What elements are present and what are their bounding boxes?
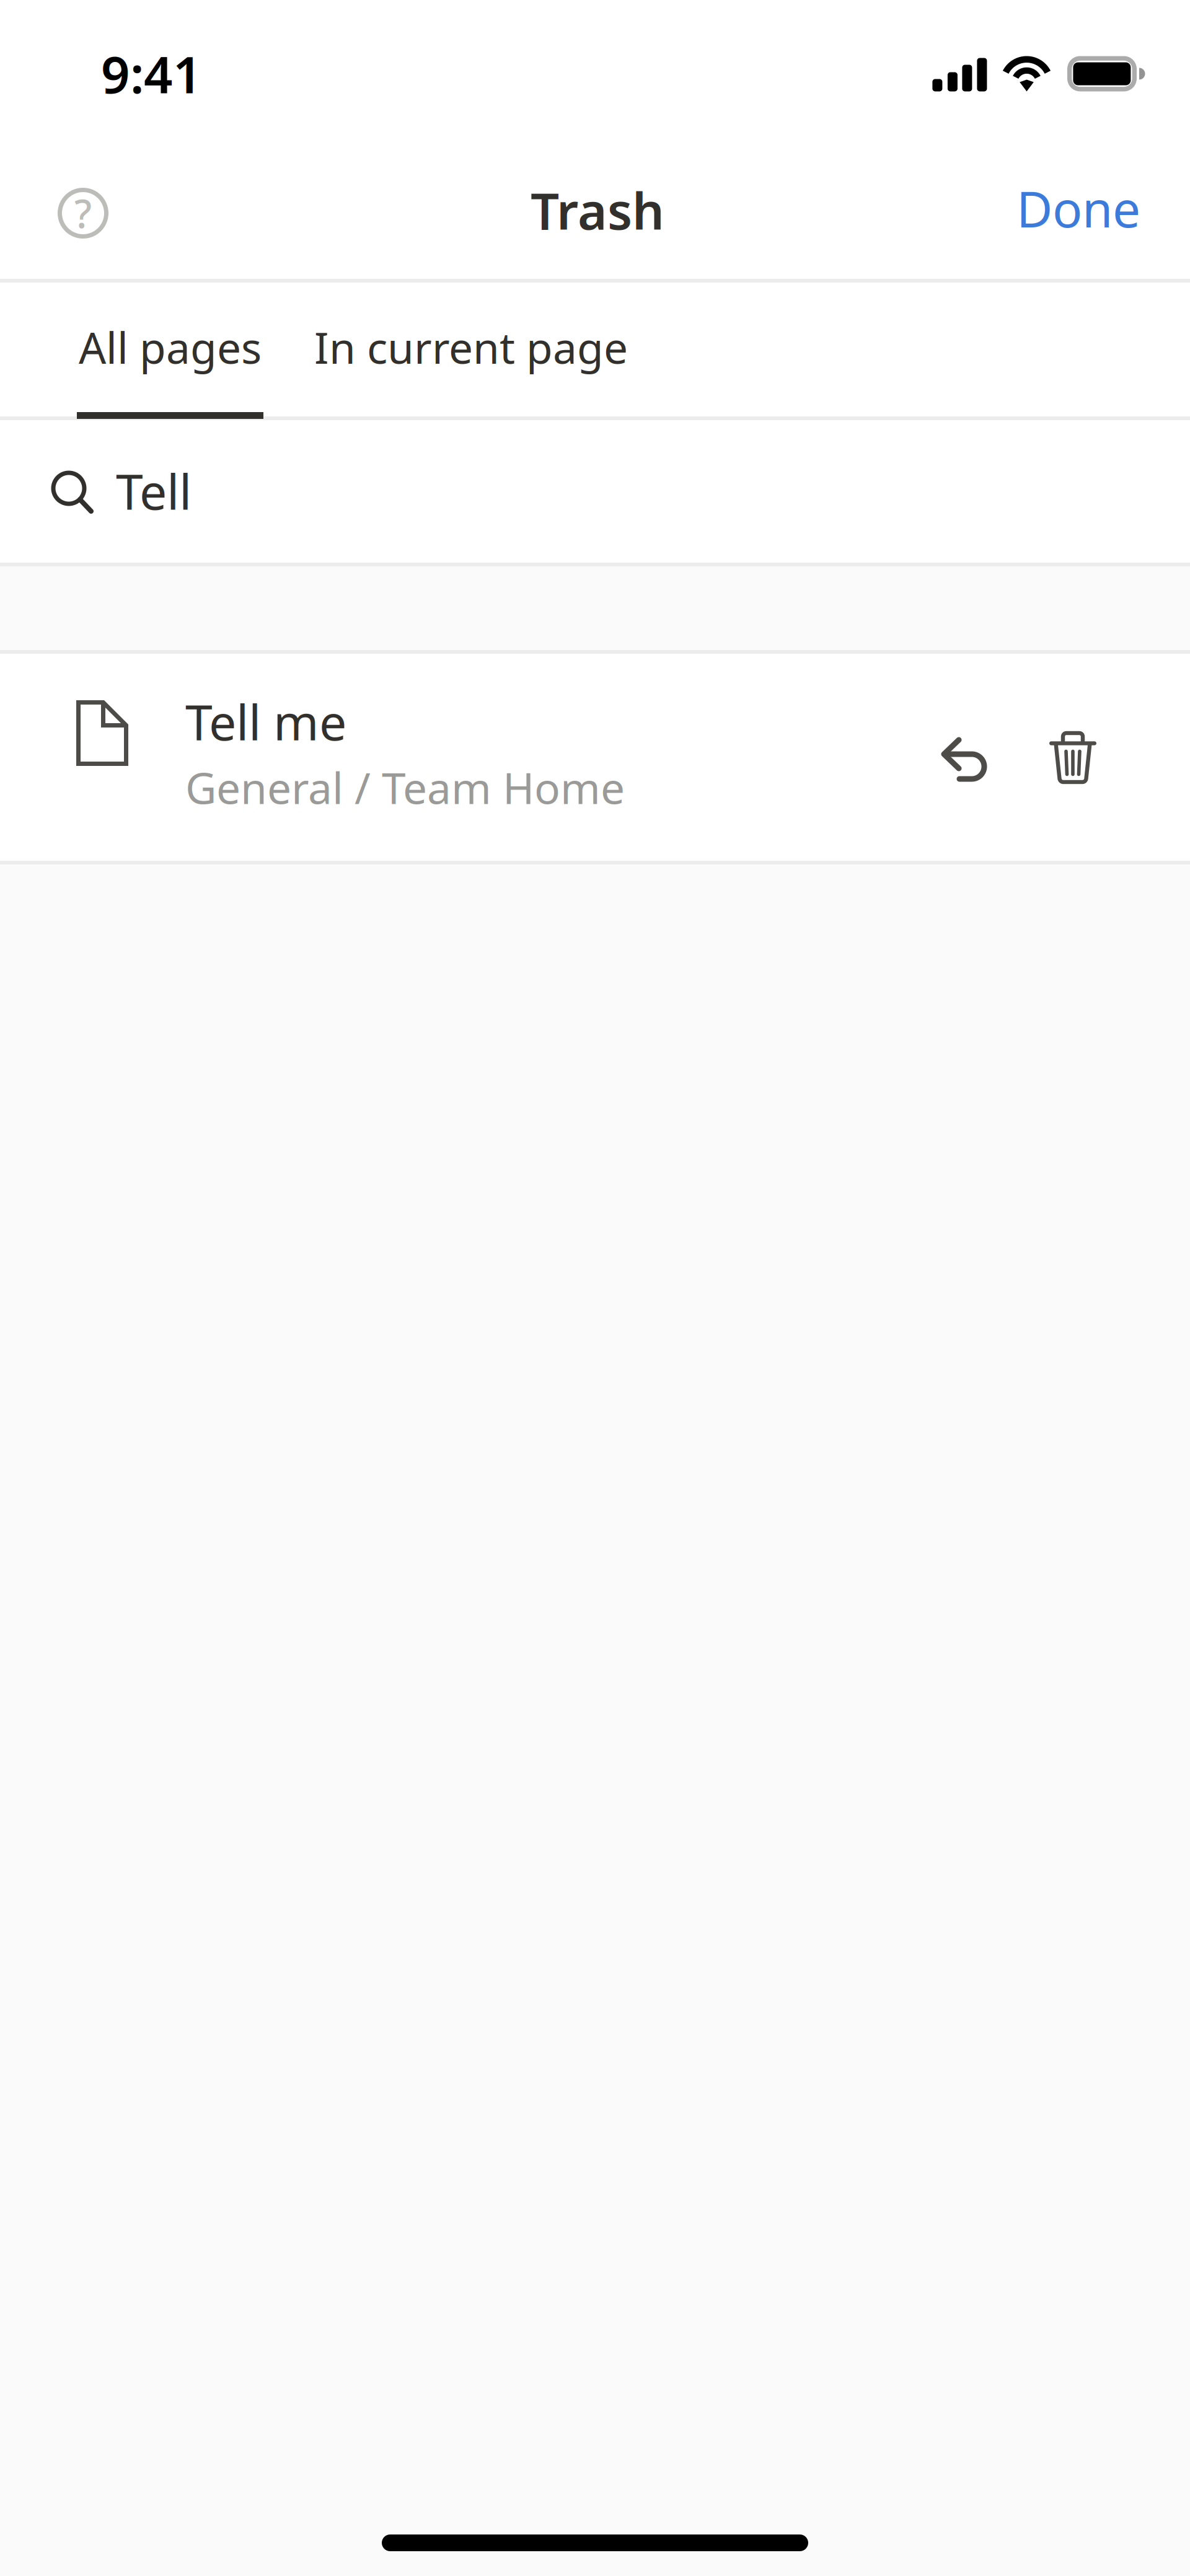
staticText: All pages — [79, 319, 262, 376]
button[interactable]: Done — [979, 146, 1190, 280]
button[interactable]: Tell me — [0, 654, 917, 861]
staticText: In current page — [314, 319, 628, 376]
staticText: ? — [74, 187, 92, 239]
button[interactable]: Help — [0, 154, 143, 273]
staticText: Trash — [531, 177, 664, 244]
staticText: 9:41 — [101, 40, 202, 107]
staticText: General / Team Home — [185, 759, 625, 816]
button[interactable]: In current page — [316, 283, 626, 416]
button[interactable]: Delete permanently — [1026, 702, 1120, 813]
staticText: Tell — [116, 458, 192, 523]
staticText: Done — [1016, 175, 1140, 241]
button[interactable]: All pages — [77, 283, 263, 416]
staticText: Tell me — [185, 689, 346, 754]
button[interactable]: Restore — [917, 703, 1011, 811]
